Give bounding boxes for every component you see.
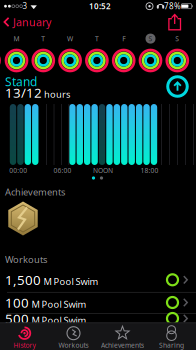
- button[interactable]: January: [0, 12, 64, 32]
- staticText: 13/12: [5, 84, 42, 101]
- staticText: M Pool Swim: [31, 314, 86, 326]
- staticText: 06:00: [54, 166, 72, 175]
- button[interactable]: [168, 13, 182, 30]
- staticText: F: [122, 34, 125, 43]
- staticText: T: [41, 34, 45, 43]
- staticText: S: [148, 34, 152, 43]
- staticText: 500: [5, 310, 29, 327]
- staticText: 10:52: [89, 1, 111, 11]
- button[interactable]: F: [111, 35, 137, 71]
- staticText: Stand: [5, 73, 37, 89]
- staticText: History: [13, 341, 35, 350]
- staticText: 100: [5, 294, 29, 311]
- staticText: hours: [44, 88, 70, 100]
- staticText: Achievements: [5, 186, 65, 198]
- staticText: Sharing: [159, 341, 184, 350]
- button[interactable]: S: [164, 35, 190, 71]
- button[interactable]: 500: [0, 308, 196, 329]
- button[interactable]: T: [30, 35, 56, 71]
- button[interactable]: [6, 200, 40, 236]
- button[interactable]: S: [137, 35, 163, 71]
- staticText: 3: [22, 1, 27, 11]
- staticText: S: [175, 34, 179, 43]
- button[interactable]: W: [57, 35, 83, 71]
- staticText: Workouts: [5, 253, 47, 266]
- button[interactable]: 100: [0, 292, 196, 313]
- staticText: 78%: [164, 1, 181, 11]
- button[interactable]: Sharing: [147, 322, 196, 350]
- staticText: 18:00: [140, 166, 158, 175]
- button[interactable]: T: [84, 35, 110, 71]
- staticText: Achievements: [101, 341, 144, 350]
- staticText: Workouts: [58, 341, 88, 350]
- button[interactable]: Workouts: [49, 322, 98, 350]
- staticText: M Pool Swim: [31, 298, 86, 310]
- staticText: NOON: [93, 166, 113, 175]
- staticText: W: [67, 34, 73, 43]
- button[interactable]: History: [0, 322, 49, 350]
- staticText: M Pool Swim: [43, 275, 98, 288]
- button[interactable]: M: [3, 35, 29, 71]
- button[interactable]: 1,500: [0, 269, 196, 290]
- staticText: T: [95, 34, 99, 43]
- staticText: 1,500: [5, 271, 41, 289]
- staticText: M: [13, 34, 19, 43]
- button[interactable]: Achievements: [98, 322, 147, 350]
- staticText: 00:00: [9, 166, 27, 175]
- staticText: January: [13, 15, 51, 29]
